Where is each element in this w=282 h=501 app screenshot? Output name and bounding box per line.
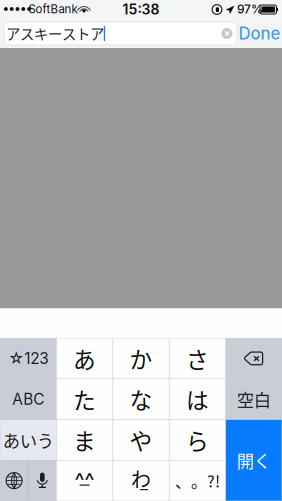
staticText: た [73, 383, 96, 415]
staticText: か [129, 342, 152, 375]
staticText: は [186, 383, 209, 415]
button[interactable] [113, 420, 169, 460]
button[interactable]: Done [240, 20, 278, 46]
button[interactable] [226, 338, 282, 378]
staticText: 開く [237, 448, 271, 473]
button[interactable]: Dictation [28, 461, 56, 501]
staticText: あいう [3, 427, 54, 452]
staticText: な [129, 383, 152, 415]
button[interactable] [226, 379, 282, 419]
button[interactable] [0, 338, 56, 378]
button[interactable] [57, 461, 112, 501]
staticText: ら [186, 423, 209, 456]
button[interactable] [169, 379, 225, 419]
button[interactable]: Clear text [218, 23, 236, 43]
staticText: あ [73, 342, 96, 375]
staticText: SoftBank [28, 2, 77, 16]
button[interactable] [57, 379, 112, 419]
staticText: 、。?! [175, 469, 220, 492]
button[interactable] [169, 420, 225, 460]
staticText: ^^ [75, 468, 95, 494]
staticText: 15:38 [122, 1, 159, 18]
staticText: や [129, 423, 152, 456]
button[interactable] [57, 420, 112, 460]
button[interactable] [169, 338, 225, 378]
staticText: ま [73, 423, 96, 456]
staticText: Done [238, 23, 280, 44]
staticText: アスキーストア [6, 23, 104, 44]
button[interactable] [0, 379, 56, 419]
button[interactable] [0, 420, 56, 460]
button[interactable]: Next keyboard [0, 461, 28, 501]
button[interactable] [226, 420, 282, 501]
staticText: 97% [237, 2, 263, 16]
staticText: ☆123 [8, 349, 48, 368]
staticText: さ [186, 342, 209, 375]
staticText: 空白 [237, 387, 271, 412]
button[interactable]: Search field [4, 22, 237, 45]
staticText: わ [131, 464, 151, 493]
button[interactable] [113, 338, 169, 378]
button[interactable] [113, 379, 169, 419]
button[interactable] [57, 338, 112, 378]
button[interactable] [169, 461, 225, 501]
staticText: ABC [12, 390, 44, 408]
button[interactable] [113, 461, 169, 501]
